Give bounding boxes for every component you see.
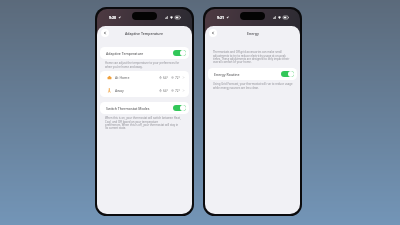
button[interactable]: Back [101,29,109,37]
staticText: Energy [247,31,259,36]
button[interactable]: Away [100,84,189,97]
staticText: Adaptive Temperature [125,31,164,36]
staticText: When this is on, your thermostat will sw… [105,116,181,130]
staticText: Energy Routine [214,72,281,77]
staticText: Home can adjust the temperature to your … [105,61,186,69]
button[interactable]: At Home [100,71,189,84]
staticText: At Home [115,75,130,80]
staticText: Adaptive Temperature [106,51,173,56]
staticText: 9:20 [109,15,117,20]
button[interactable]: Energy Routine [208,68,297,80]
button[interactable]: Back [209,29,217,37]
staticText: Thermostats and Off-grid accessories can… [213,50,290,64]
staticText: 64° [163,89,169,93]
staticText: Away [115,88,124,93]
staticText: 72° [175,89,181,93]
staticText: Switch Thermostat Modes [106,106,173,111]
button[interactable]: Switch Thermostat Modes [100,102,189,114]
staticText: Using Grid Forecast, your thermostat wil… [213,82,294,90]
button[interactable]: Adaptive Temperature [100,47,189,59]
staticText: 72° [175,76,181,80]
staticText: 64° [163,76,169,80]
staticText: 9:21 [217,15,225,20]
